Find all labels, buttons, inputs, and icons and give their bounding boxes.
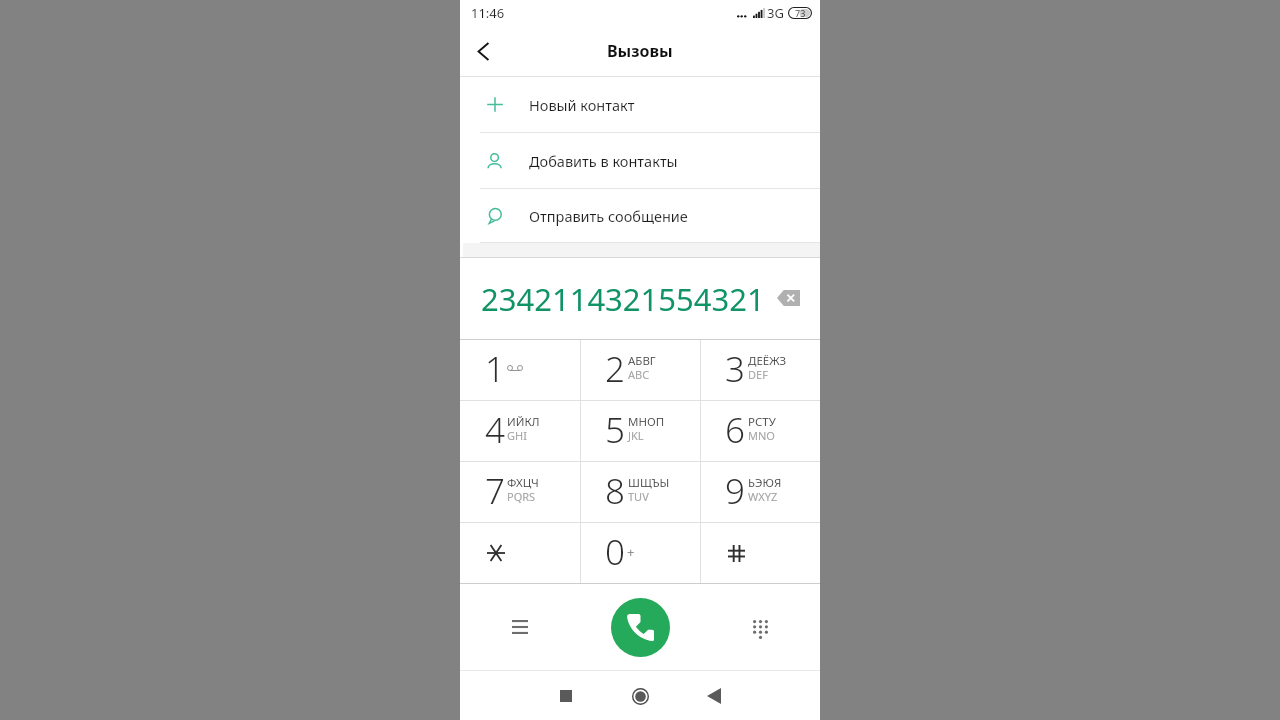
button[interactable]: 1	[460, 340, 580, 400]
staticText: 11:46	[471, 4, 505, 22]
staticText: JKL	[628, 428, 644, 443]
staticText: 9	[725, 467, 745, 515]
staticText: АБВГ	[628, 353, 656, 369]
staticText: ФХЦЧ	[507, 475, 539, 491]
button[interactable]: Back	[677, 674, 751, 718]
button[interactable]: 0	[581, 523, 700, 583]
staticText: Вызовы	[607, 40, 673, 62]
button[interactable]: 8	[581, 462, 700, 522]
staticText: TUV	[628, 489, 649, 504]
staticText: 1	[485, 345, 505, 393]
button[interactable]: Hash	[701, 523, 820, 583]
staticText: +	[627, 543, 635, 561]
button[interactable]: Star	[460, 523, 580, 583]
staticText: 5	[605, 406, 625, 454]
staticText: 6	[725, 406, 745, 454]
button[interactable]: Home	[603, 674, 677, 718]
button[interactable]: 9	[701, 462, 820, 522]
staticText: ABC	[628, 367, 650, 382]
staticText: ШЩЪЫ	[628, 475, 670, 491]
staticText: 7	[485, 467, 505, 515]
button[interactable]: Новый контакт	[460, 77, 820, 132]
staticText: ДЕЁЖЗ	[748, 353, 787, 369]
button[interactable]: 7	[460, 462, 580, 522]
button[interactable]: Добавить в контакты	[460, 133, 820, 188]
button[interactable]: 4	[460, 401, 580, 461]
staticText: 0	[605, 528, 625, 576]
button[interactable]: 3	[701, 340, 820, 400]
staticText: РСТУ	[748, 414, 776, 430]
staticText: PQRS	[507, 489, 536, 504]
staticText: 73	[795, 7, 806, 19]
staticText: МНОП	[628, 414, 665, 430]
staticText: 2342114321554321	[481, 278, 765, 320]
staticText: 4	[485, 406, 505, 454]
staticText: 2	[605, 345, 625, 393]
staticText: GHI	[507, 428, 527, 443]
button[interactable]: Call	[611, 598, 670, 657]
staticText: ИЙКЛ	[507, 414, 540, 430]
button[interactable]: 5	[581, 401, 700, 461]
button[interactable]: Backspace	[766, 276, 810, 320]
staticText: Добавить в контакты	[529, 151, 678, 171]
staticText: WXYZ	[748, 489, 778, 504]
staticText: Отправить сообщение	[529, 206, 688, 226]
button[interactable]: Call log	[496, 603, 544, 651]
staticText: MNO	[748, 428, 775, 443]
staticText: ЬЭЮЯ	[748, 475, 782, 491]
staticText: Новый контакт	[529, 95, 635, 115]
button[interactable]: 2	[581, 340, 700, 400]
staticText: 3G	[767, 4, 784, 22]
staticText: 3	[725, 345, 745, 393]
staticText: 8	[605, 467, 625, 515]
button[interactable]: Recents	[529, 674, 603, 718]
button[interactable]: Dialpad	[736, 603, 784, 651]
button[interactable]: 6	[701, 401, 820, 461]
button[interactable]: Back	[460, 28, 506, 74]
button[interactable]: Отправить сообщение	[460, 189, 820, 242]
staticText: DEF	[748, 367, 768, 382]
